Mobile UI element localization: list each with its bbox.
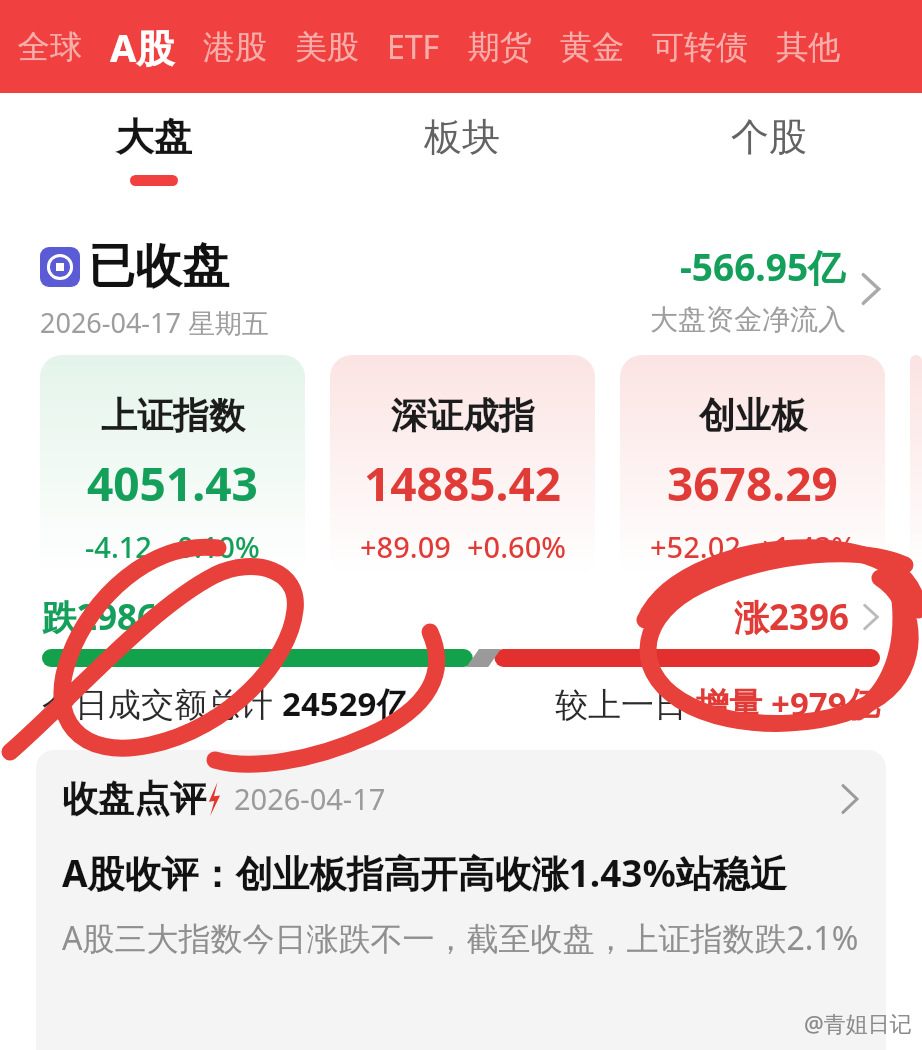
- staticText: 其他: [776, 27, 840, 67]
- other: More: [860, 272, 882, 306]
- staticText: -566.95亿: [680, 241, 846, 292]
- staticText: 2026-04-17: [234, 779, 386, 818]
- staticText: 14885.42: [364, 452, 562, 515]
- staticText: +1.43%: [757, 527, 856, 566]
- button[interactable]: 美股: [295, 27, 359, 67]
- button[interactable]: 上证指数: [40, 355, 305, 577]
- staticText: 今日成交额总计: [42, 681, 282, 726]
- button[interactable]: 港股: [203, 27, 267, 67]
- staticText: 黄金: [560, 27, 624, 67]
- staticText: 期货: [468, 27, 532, 67]
- staticText: 24529亿: [282, 681, 410, 726]
- staticText: 全球: [18, 27, 82, 67]
- staticText: +89.09: [360, 527, 451, 566]
- button[interactable]: [910, 355, 922, 577]
- staticText: 板块: [424, 113, 500, 161]
- staticText: 跌2986: [42, 593, 158, 641]
- button[interactable]: 可转债: [652, 27, 748, 67]
- button[interactable]: 深证成指: [330, 355, 595, 577]
- staticText: 2026-04-17 星期五: [40, 304, 269, 341]
- staticText: 港股: [203, 27, 267, 67]
- staticText: 大盘: [116, 113, 192, 161]
- staticText: -4.12: [85, 527, 152, 566]
- staticText: ETF: [387, 25, 440, 69]
- staticText: @青姐日记: [804, 1008, 912, 1038]
- button[interactable]: 收盘点评: [36, 750, 886, 1050]
- staticText: 较上一日: [555, 681, 696, 726]
- button[interactable]: 跌2986: [42, 593, 880, 641]
- staticText: 个股: [731, 113, 807, 161]
- staticText: -0.10%: [168, 527, 260, 566]
- staticText: +52.02: [650, 527, 741, 566]
- button[interactable]: 大盘: [0, 93, 308, 213]
- staticText: A股收评：创业板指高开高收涨1.43%站稳近11…: [62, 847, 860, 898]
- button[interactable]: 其他: [776, 27, 840, 67]
- staticText: 收盘点评: [62, 776, 206, 821]
- staticText: 已收盘: [88, 237, 229, 296]
- staticText: A股三大指数今日涨跌不一，截至收盘，上证指数跌2.1%: [62, 916, 859, 960]
- staticText: 美股: [295, 27, 359, 67]
- button[interactable]: A股: [110, 21, 175, 73]
- staticText: 创业板: [699, 393, 807, 438]
- staticText: +979亿: [771, 681, 880, 726]
- other: More: [862, 603, 880, 631]
- button[interactable]: 已收盘: [40, 237, 882, 341]
- staticText: +0.60%: [467, 527, 566, 566]
- staticText: 可转债: [652, 27, 748, 67]
- staticText: 涨2396: [734, 593, 850, 641]
- staticText: 大盘资金净流入: [650, 302, 846, 337]
- button[interactable]: 板块: [308, 93, 615, 213]
- staticText: 3678.29: [667, 452, 838, 515]
- button[interactable]: ETF: [387, 25, 440, 69]
- button[interactable]: 期货: [468, 27, 532, 67]
- staticText: 上证指数: [101, 393, 245, 438]
- button[interactable]: 个股: [615, 93, 922, 213]
- staticText: 深证成指: [391, 393, 535, 438]
- button[interactable]: 全球: [18, 27, 82, 67]
- button[interactable]: 黄金: [560, 27, 624, 67]
- button[interactable]: 创业板: [620, 355, 885, 577]
- other: More: [840, 783, 860, 815]
- staticText: 增量: [696, 681, 771, 726]
- staticText: 4051.43: [87, 452, 258, 515]
- staticText: A股: [110, 21, 175, 73]
